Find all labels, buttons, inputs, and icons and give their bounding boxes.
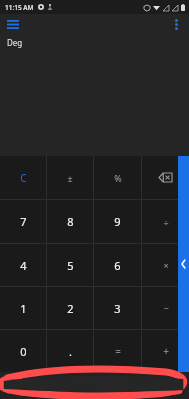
staticText: ÷ — [163, 216, 169, 228]
button[interactable]: 7 — [0, 200, 46, 243]
button[interactable]: × — [142, 244, 189, 286]
staticText: 0 — [20, 344, 27, 359]
button[interactable]: C — [0, 156, 46, 199]
button[interactable]: 6 — [94, 244, 141, 286]
staticText: 6 — [114, 258, 121, 273]
button[interactable]: Deg — [7, 37, 23, 48]
staticText: + — [163, 344, 169, 358]
button[interactable]: 3 — [94, 287, 141, 329]
staticText: C — [20, 171, 27, 185]
button[interactable]: − — [142, 287, 189, 329]
staticText: 2 — [67, 301, 74, 316]
staticText: 7 — [20, 214, 27, 229]
staticText: × — [163, 259, 169, 271]
button[interactable]: 2 — [47, 287, 93, 329]
staticText: % — [114, 172, 122, 184]
staticText: . — [69, 344, 72, 359]
button[interactable]: 1 — [0, 287, 46, 329]
staticText: ± — [67, 172, 73, 184]
staticText: = — [115, 344, 121, 358]
button[interactable]: 8 — [47, 200, 93, 243]
button[interactable]: 5 — [47, 244, 93, 286]
button[interactable]: 4 — [0, 244, 46, 286]
button[interactable]: 0 — [0, 330, 46, 372]
button[interactable]: More options — [167, 15, 185, 33]
button[interactable]: Open navigation menu — [4, 15, 22, 33]
staticText: 4 — [20, 258, 27, 273]
staticText: 5 — [67, 258, 74, 273]
button[interactable]: = — [94, 330, 141, 372]
staticText: 3 — [114, 301, 121, 316]
button[interactable]: ± — [47, 156, 93, 199]
staticText: 11:15 AM — [5, 3, 34, 12]
staticText: − — [163, 302, 169, 314]
staticText: Deg — [7, 37, 23, 48]
button[interactable]: % — [94, 156, 141, 199]
staticText: 9 — [114, 214, 121, 229]
staticText: 1 — [20, 301, 27, 316]
button[interactable]: 9 — [94, 200, 141, 243]
button[interactable]: + — [142, 330, 189, 372]
staticText: 8 — [67, 214, 74, 229]
button[interactable]: . — [47, 330, 93, 372]
button[interactable]: Backspace — [142, 156, 189, 199]
button[interactable]: ÷ — [142, 200, 189, 243]
button[interactable]: Open advanced pad — [178, 156, 189, 372]
